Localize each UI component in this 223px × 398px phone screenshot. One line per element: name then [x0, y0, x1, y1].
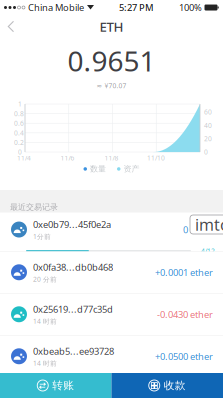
staticText: 5:27 PM	[119, 1, 154, 14]
staticText: 0.8	[14, 109, 24, 118]
staticText: 1分前	[33, 232, 51, 241]
staticText: 11/10	[147, 154, 165, 162]
staticText: 0.6	[14, 119, 24, 128]
staticText: +0.0500 ether	[155, 350, 213, 362]
button[interactable]: 0x0fa38...db0b468	[0, 251, 223, 293]
button[interactable]: 0xbeab5...ee93728	[0, 335, 223, 377]
staticText: 1	[18, 100, 22, 108]
staticText: 20	[204, 134, 212, 143]
staticText: China Mobile	[28, 1, 84, 14]
staticText: ≈ ¥70.07	[96, 81, 126, 90]
staticText: 0xe0b79...45f0e2a	[33, 218, 111, 231]
staticText: -0.0430 ether	[157, 308, 213, 320]
staticText: 0x25619...d77c35d	[33, 303, 113, 315]
staticText: 4/12	[201, 246, 215, 255]
staticText: 60	[204, 108, 212, 116]
staticText: 数量	[90, 164, 106, 174]
button[interactable]: Back	[0, 15, 22, 37]
staticText: imto	[195, 214, 223, 235]
staticText: 0.2	[14, 138, 24, 147]
staticText: 0	[204, 148, 208, 156]
staticText: 0x0fa38...db0b468	[33, 261, 113, 273]
staticText: ETH	[99, 18, 123, 35]
button[interactable]: 收款	[111, 373, 223, 398]
staticText: 0	[18, 148, 22, 156]
staticText: 0 ether	[183, 223, 213, 236]
staticText: 0xbeab5...ee93728	[33, 345, 114, 357]
staticText: 14 时前	[33, 317, 57, 326]
staticText: 0.4	[14, 128, 24, 137]
staticText: 20 分前	[33, 275, 57, 284]
staticText: 40	[204, 121, 212, 130]
staticText: 资产	[123, 164, 139, 174]
staticText: 11/4	[17, 154, 31, 162]
staticText: 最近交易记录	[10, 202, 58, 212]
staticText: 100%	[179, 1, 202, 14]
button[interactable]: 0xe0b79...45f0e2a	[0, 212, 223, 251]
staticText: 0.9651	[67, 42, 155, 79]
staticText: 转账	[52, 379, 74, 392]
staticText: 收款	[164, 379, 186, 392]
staticText: +0.0001 ether	[155, 266, 213, 278]
staticText: 14 时前	[33, 359, 57, 368]
button[interactable]: 0x25619...d77c35d	[0, 293, 223, 335]
button[interactable]: 转账	[0, 373, 111, 398]
staticText: 11/8	[104, 154, 118, 162]
staticText: 11/6	[60, 154, 74, 162]
